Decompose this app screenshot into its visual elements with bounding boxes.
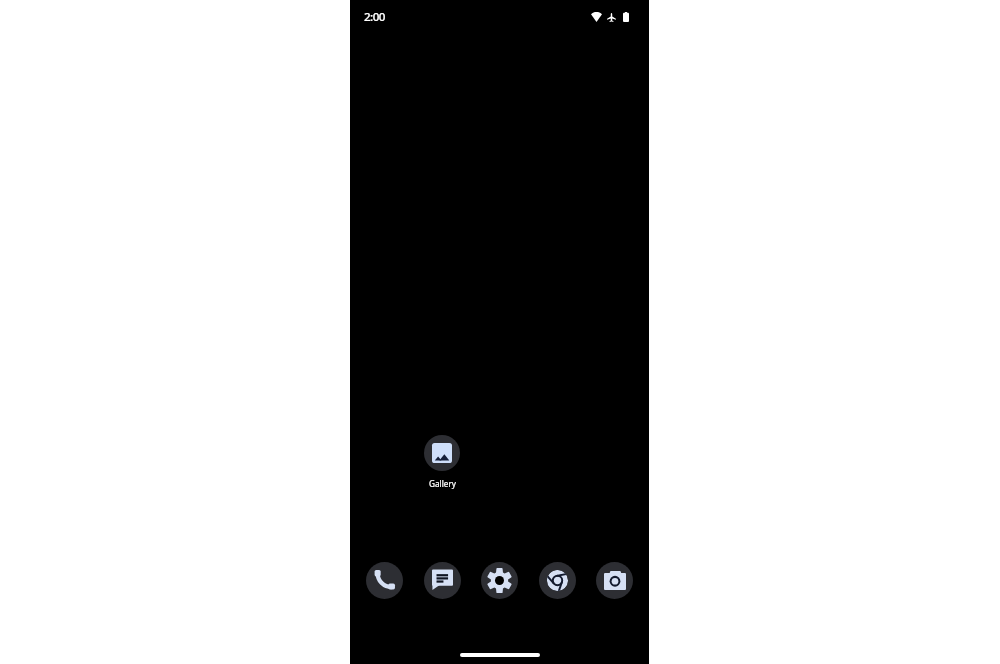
button[interactable]: Gallery — [413, 435, 470, 489]
button[interactable]: Settings — [481, 562, 518, 599]
button[interactable]: Phone — [366, 562, 403, 599]
button[interactable]: Chrome — [539, 562, 576, 599]
button[interactable]: Camera — [596, 562, 633, 599]
staticText: 2:00 — [364, 9, 385, 25]
button[interactable]: Messages — [424, 562, 461, 599]
staticText: Gallery — [429, 478, 456, 489]
